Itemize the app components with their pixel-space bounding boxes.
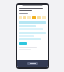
button[interactable]: Primary action <box>19 42 27 45</box>
button[interactable]: Colour swatch <box>19 16 22 19</box>
button[interactable]: Continue <box>27 62 38 65</box>
button[interactable]: Colour swatch <box>32 16 36 19</box>
button[interactable]: Colour swatch <box>23 16 26 19</box>
button[interactable]: Colour swatch <box>37 16 41 19</box>
